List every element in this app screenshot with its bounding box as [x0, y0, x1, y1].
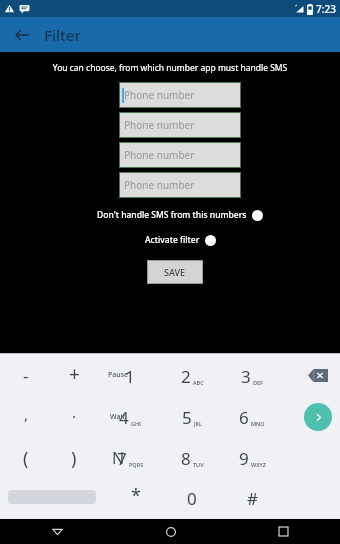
button[interactable]: 9 — [230, 444, 274, 472]
button[interactable]: 3 — [230, 362, 274, 390]
staticText: 9 — [239, 447, 249, 470]
button[interactable]: Phone number — [119, 82, 241, 108]
staticText: GHI — [131, 420, 142, 427]
staticText: Activate filter — [145, 234, 200, 246]
staticText: 6 — [239, 406, 249, 429]
button[interactable]: 0 — [176, 484, 208, 512]
staticText: # — [247, 487, 258, 510]
button[interactable]: # — [236, 484, 268, 512]
staticText: ( — [23, 446, 29, 471]
button[interactable]: Wait — [100, 405, 136, 429]
button[interactable]: Phone number — [119, 172, 241, 198]
staticText: 4 — [119, 406, 129, 429]
button[interactable]: * — [120, 481, 152, 509]
button[interactable]: Backspace — [302, 363, 334, 387]
staticText: ) — [71, 446, 77, 471]
button[interactable]: 1 — [108, 362, 152, 390]
button[interactable]: - — [10, 361, 42, 389]
button[interactable]: 4 — [108, 403, 152, 431]
button[interactable]: Phone number — [119, 142, 241, 168]
staticText: 0 — [187, 487, 197, 510]
staticText: ABC — [193, 379, 204, 386]
staticText: Phone number — [124, 88, 195, 102]
staticText: 3 — [241, 365, 251, 388]
button[interactable]: , — [10, 400, 42, 428]
button[interactable]: 6 — [230, 403, 274, 431]
button[interactable]: + — [58, 360, 90, 388]
staticText: * — [131, 483, 141, 508]
button[interactable]: Activate filter — [145, 234, 216, 246]
button[interactable]: Next — [304, 403, 332, 431]
staticText: . — [72, 402, 77, 422]
staticText: Phone number — [124, 148, 195, 162]
button[interactable]: ) — [58, 444, 90, 472]
button[interactable]: Back — [0, 519, 114, 544]
button[interactable]: 7 — [108, 444, 152, 472]
staticText: DEF — [253, 379, 263, 386]
button[interactable]: N — [102, 444, 134, 472]
staticText: 2 — [181, 365, 191, 388]
staticText: Phone number — [124, 118, 195, 132]
staticText: + — [69, 361, 80, 387]
staticText: Don't handle SMS from this numbers — [97, 209, 247, 221]
staticText: PQRS — [129, 461, 144, 468]
staticText: 1 — [125, 365, 135, 388]
button[interactable]: 2 — [170, 362, 214, 390]
staticText: SAVE — [164, 266, 186, 278]
staticText: 8 — [181, 447, 191, 470]
staticText: Phone number — [124, 178, 195, 192]
button[interactable]: SAVE — [147, 260, 203, 284]
staticText: 5 — [182, 406, 192, 429]
staticText: 7:23 — [316, 2, 336, 16]
button[interactable]: Home — [114, 519, 227, 544]
button[interactable]: Recents — [227, 519, 340, 544]
staticText: TUV — [193, 461, 204, 468]
staticText: Pause — [108, 370, 129, 380]
staticText: Filter — [44, 25, 81, 45]
button[interactable]: Back — [8, 21, 36, 49]
staticText: JKL — [194, 420, 203, 427]
button[interactable]: . — [58, 398, 90, 426]
staticText: 7 — [117, 447, 127, 470]
staticText: WXYZ — [251, 461, 266, 468]
button[interactable]: 5 — [170, 403, 214, 431]
staticText: Wait — [110, 412, 126, 422]
button[interactable]: Phone number — [119, 112, 241, 138]
staticText: - — [23, 364, 29, 387]
staticText: MNO — [251, 420, 265, 427]
button[interactable]: Don't handle SMS from this numbers — [97, 209, 263, 221]
staticText: , — [24, 404, 29, 424]
button[interactable]: 8 — [170, 444, 214, 472]
button[interactable]: Pause — [100, 363, 136, 387]
button[interactable]: ( — [10, 444, 42, 472]
staticText: You can choose, from which number app mu… — [10, 62, 330, 74]
staticText: N — [112, 447, 125, 469]
